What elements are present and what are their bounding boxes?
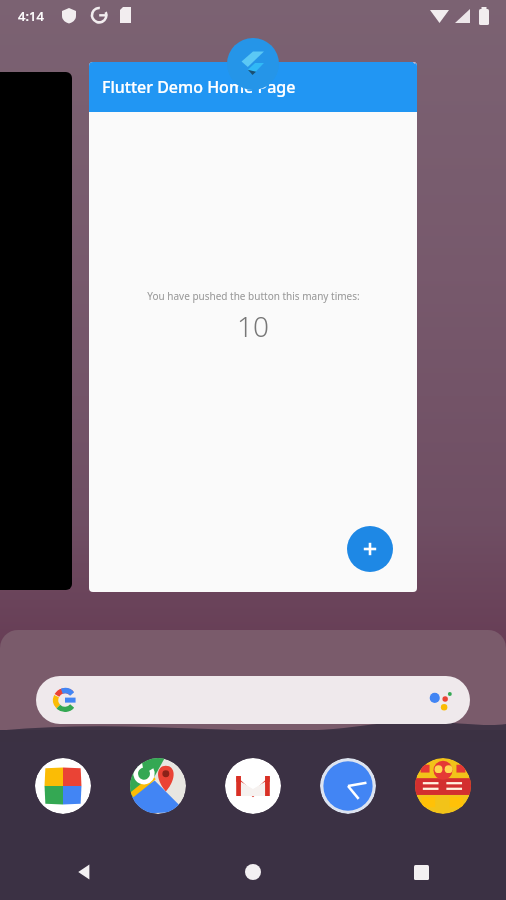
button[interactable]: Flutter app icon (227, 38, 279, 90)
button[interactable]: Gmail (225, 758, 281, 814)
button[interactable]: Photos (35, 758, 91, 814)
staticText: You have pushed the button this many tim… (147, 289, 360, 303)
button[interactable]: App (415, 758, 471, 814)
button[interactable]: Google search (36, 676, 470, 724)
button[interactable] (89, 62, 417, 592)
button[interactable]: Home (168, 844, 337, 900)
staticText: 10 (237, 307, 269, 345)
button[interactable]: Clock (320, 758, 376, 814)
staticText: Flutter Demo Home Page (102, 76, 296, 98)
button[interactable]: Increment (347, 526, 393, 572)
button[interactable]: Recent apps (337, 844, 506, 900)
button[interactable]: Back (0, 844, 168, 900)
button[interactable]: Maps (130, 758, 186, 814)
staticText: 4:14 (18, 7, 44, 25)
